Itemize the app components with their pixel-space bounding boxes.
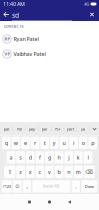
button[interactable]: s [16, 151, 25, 163]
staticText: y [53, 139, 56, 146]
staticText: 4G [84, 1, 89, 7]
staticText: q [5, 139, 8, 146]
staticText: part [67, 126, 74, 132]
staticText: English (US) [43, 185, 59, 188]
staticText: , [26, 183, 27, 190]
staticText: pat [4, 126, 9, 132]
button[interactable]: v [45, 166, 54, 178]
staticText: c [38, 168, 41, 175]
staticText: e [24, 139, 27, 146]
staticText: r [34, 139, 36, 146]
button[interactable]: m [74, 166, 83, 178]
button[interactable]: k [74, 151, 83, 163]
button[interactable]: part [64, 122, 77, 135]
staticText: a [10, 154, 13, 161]
button[interactable]: l [84, 151, 92, 163]
button[interactable]: ☺ [13, 180, 21, 192]
button[interactable]: More suggestions [90, 122, 99, 135]
button[interactable]: ?123 [2, 180, 12, 192]
staticText: Vaibhav Patel [14, 50, 46, 58]
staticText: f [39, 154, 41, 161]
button[interactable]: VP [0, 46, 99, 61]
button[interactable]: Back [59, 194, 79, 209]
button[interactable]: English (US) [32, 180, 70, 192]
button[interactable]: t [40, 137, 49, 149]
button[interactable]: par [39, 122, 51, 135]
button[interactable]: ⇧ [4, 166, 15, 178]
staticText: ?123 [3, 184, 11, 189]
staticText: l [87, 154, 88, 161]
staticText: x [29, 168, 32, 175]
button[interactable]: f [36, 151, 44, 163]
button[interactable]: Clear text [86, 8, 97, 21]
staticText: sd [12, 11, 19, 20]
staticText: RP [4, 36, 9, 42]
button[interactable]: Recents [19, 194, 39, 209]
button[interactable]: j [64, 151, 73, 163]
button[interactable]: h [55, 151, 63, 163]
staticText: Pat [17, 126, 22, 132]
staticText: m [76, 168, 81, 175]
button[interactable]: Home [39, 194, 59, 209]
button[interactable]: p [88, 137, 97, 149]
staticText: p [91, 139, 94, 146]
staticText: Ryan Patel [14, 35, 39, 43]
button[interactable]: pa [77, 122, 89, 135]
staticText: ⌫ [85, 169, 93, 175]
staticText: v [48, 168, 51, 175]
staticText: ☺ [15, 184, 19, 189]
button[interactable]: PST [51, 122, 64, 135]
staticText: t [44, 139, 46, 146]
staticText: 11:40 AM [3, 0, 25, 8]
staticText: g [48, 154, 51, 161]
button[interactable]: y [50, 137, 59, 149]
staticText: z [19, 168, 22, 175]
button[interactable]: u [60, 137, 68, 149]
staticText: CONTACTS [4, 24, 24, 29]
staticText: u [62, 139, 65, 146]
staticText: h [58, 154, 61, 161]
staticText: i [73, 139, 74, 146]
staticText: n [67, 168, 70, 175]
staticText: d [29, 154, 32, 161]
staticText: w [14, 139, 18, 146]
button[interactable]: ⌫ [84, 166, 95, 178]
button[interactable]: b [55, 166, 63, 178]
staticText: PST [55, 126, 61, 132]
staticText: pa [81, 126, 85, 132]
button[interactable]: z [16, 166, 25, 178]
button[interactable]: d [26, 151, 34, 163]
staticText: o [82, 139, 85, 146]
staticText: j [68, 154, 69, 161]
button[interactable]: g [45, 151, 54, 163]
staticText: pay [29, 126, 35, 132]
button[interactable]: e [21, 137, 30, 149]
button[interactable]: w [12, 137, 20, 149]
button[interactable]: n [64, 166, 73, 178]
button[interactable]: c [36, 166, 44, 178]
staticText: par [42, 126, 48, 132]
button[interactable]: pay [26, 122, 38, 135]
staticText: . [75, 183, 76, 190]
button[interactable]: q [2, 137, 10, 149]
button[interactable]: pat [0, 122, 12, 135]
button[interactable]: Back [1, 8, 12, 21]
staticText: k [77, 154, 80, 161]
staticText: b [58, 168, 61, 175]
staticText: s [19, 154, 22, 161]
button[interactable]: Done [81, 180, 97, 192]
button[interactable]: a [7, 151, 15, 163]
button[interactable]: Pat [13, 122, 25, 135]
button[interactable]: r [31, 137, 39, 149]
staticText: ⇧ [8, 169, 12, 175]
staticText: Done [85, 184, 94, 189]
button[interactable]: o [79, 137, 87, 149]
staticText: VP [4, 51, 9, 57]
button[interactable]: i [69, 137, 78, 149]
button[interactable]: RP [0, 31, 99, 46]
button[interactable]: , [23, 180, 31, 192]
button[interactable]: . [72, 180, 80, 192]
button[interactable]: x [26, 166, 34, 178]
